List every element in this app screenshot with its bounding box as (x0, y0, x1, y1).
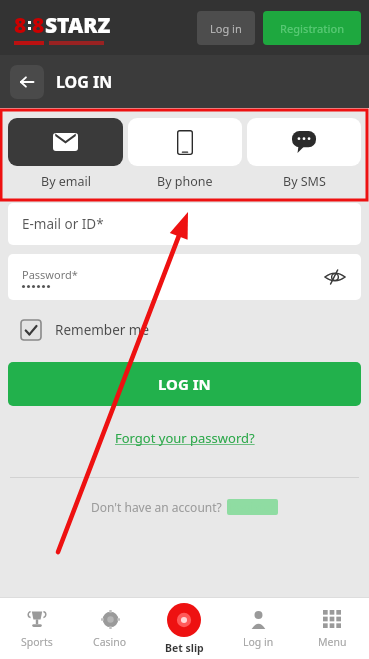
staticText: Forgot your password? (115, 429, 255, 447)
staticText: Bet slip (165, 641, 204, 655)
staticText: 8 (32, 11, 45, 40)
button[interactable]: By SMS (247, 118, 361, 190)
button[interactable]: Forgot your password? (111, 425, 259, 451)
staticText: E-mail or ID* (22, 215, 104, 233)
staticText: Registration (280, 21, 345, 36)
staticText: By SMS (283, 173, 326, 190)
button[interactable]: Menu (295, 598, 369, 659)
button[interactable]: Show password (319, 261, 351, 293)
staticText: Remember me (55, 321, 150, 339)
staticText: Casino (93, 635, 127, 649)
button[interactable]: Remember me (8, 319, 150, 341)
staticText: By email (41, 173, 91, 190)
button[interactable]: Password* (8, 254, 361, 300)
button[interactable]: Register (227, 499, 278, 515)
button[interactable]: Log in (197, 11, 255, 45)
staticText: Menu (318, 635, 347, 649)
staticText: LOG IN (56, 71, 113, 93)
button[interactable]: Sports (0, 598, 73, 659)
staticText: STARZ (45, 11, 111, 40)
button[interactable]: By email (8, 118, 123, 190)
button[interactable]: Casino (73, 598, 147, 659)
staticText: Log in (210, 21, 242, 36)
button[interactable]: Registration (263, 11, 361, 45)
button[interactable]: Bet slip (147, 598, 221, 659)
staticText: Don't have an account? (91, 499, 222, 515)
staticText: Sports (21, 635, 53, 649)
button[interactable]: E-mail or ID* (8, 203, 361, 245)
button[interactable]: LOG IN (8, 362, 361, 406)
staticText: 8 (14, 11, 27, 40)
staticText: Password* (22, 267, 78, 282)
button[interactable]: By phone (128, 118, 242, 190)
button[interactable]: Log in (221, 598, 295, 659)
button[interactable]: Back (10, 65, 44, 99)
staticText: Log in (243, 635, 274, 649)
staticText: LOG IN (158, 374, 211, 394)
staticText: By phone (157, 173, 213, 190)
